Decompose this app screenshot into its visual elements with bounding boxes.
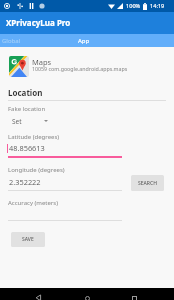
button[interactable]: Set: [10, 115, 52, 128]
staticText: Location: [8, 87, 43, 98]
staticText: SEARCH: [138, 180, 157, 187]
staticText: Set: [12, 117, 22, 126]
staticText: Latitude (degrees): [8, 133, 60, 141]
button[interactable]: Recent apps: [119, 288, 150, 300]
button[interactable]: SAVE: [11, 232, 45, 247]
staticText: XPrivacyLua Pro: [6, 17, 71, 28]
button[interactable]: Home: [72, 288, 103, 300]
button[interactable]: App: [22, 34, 146, 47]
button[interactable]: Back: [23, 288, 54, 300]
staticText: 10059 com.google.android.apps.maps: [32, 65, 128, 72]
staticText: Longitude (degrees): [8, 166, 65, 174]
staticText: App: [78, 37, 90, 45]
staticText: 100%: [126, 2, 141, 10]
staticText: 14:19: [150, 2, 165, 10]
staticText: 2.352222: [9, 177, 41, 187]
staticText: Global: [2, 37, 21, 45]
staticText: 48.856613: [9, 143, 45, 153]
button[interactable]: [0, 47, 174, 81]
button[interactable]: SEARCH: [131, 175, 164, 191]
button[interactable]: Global: [0, 34, 22, 47]
staticText: SAVE: [22, 236, 34, 243]
staticText: Fake location: [8, 105, 46, 113]
staticText: Accuracy (meters): [8, 199, 59, 207]
staticText: Maps: [32, 57, 52, 67]
